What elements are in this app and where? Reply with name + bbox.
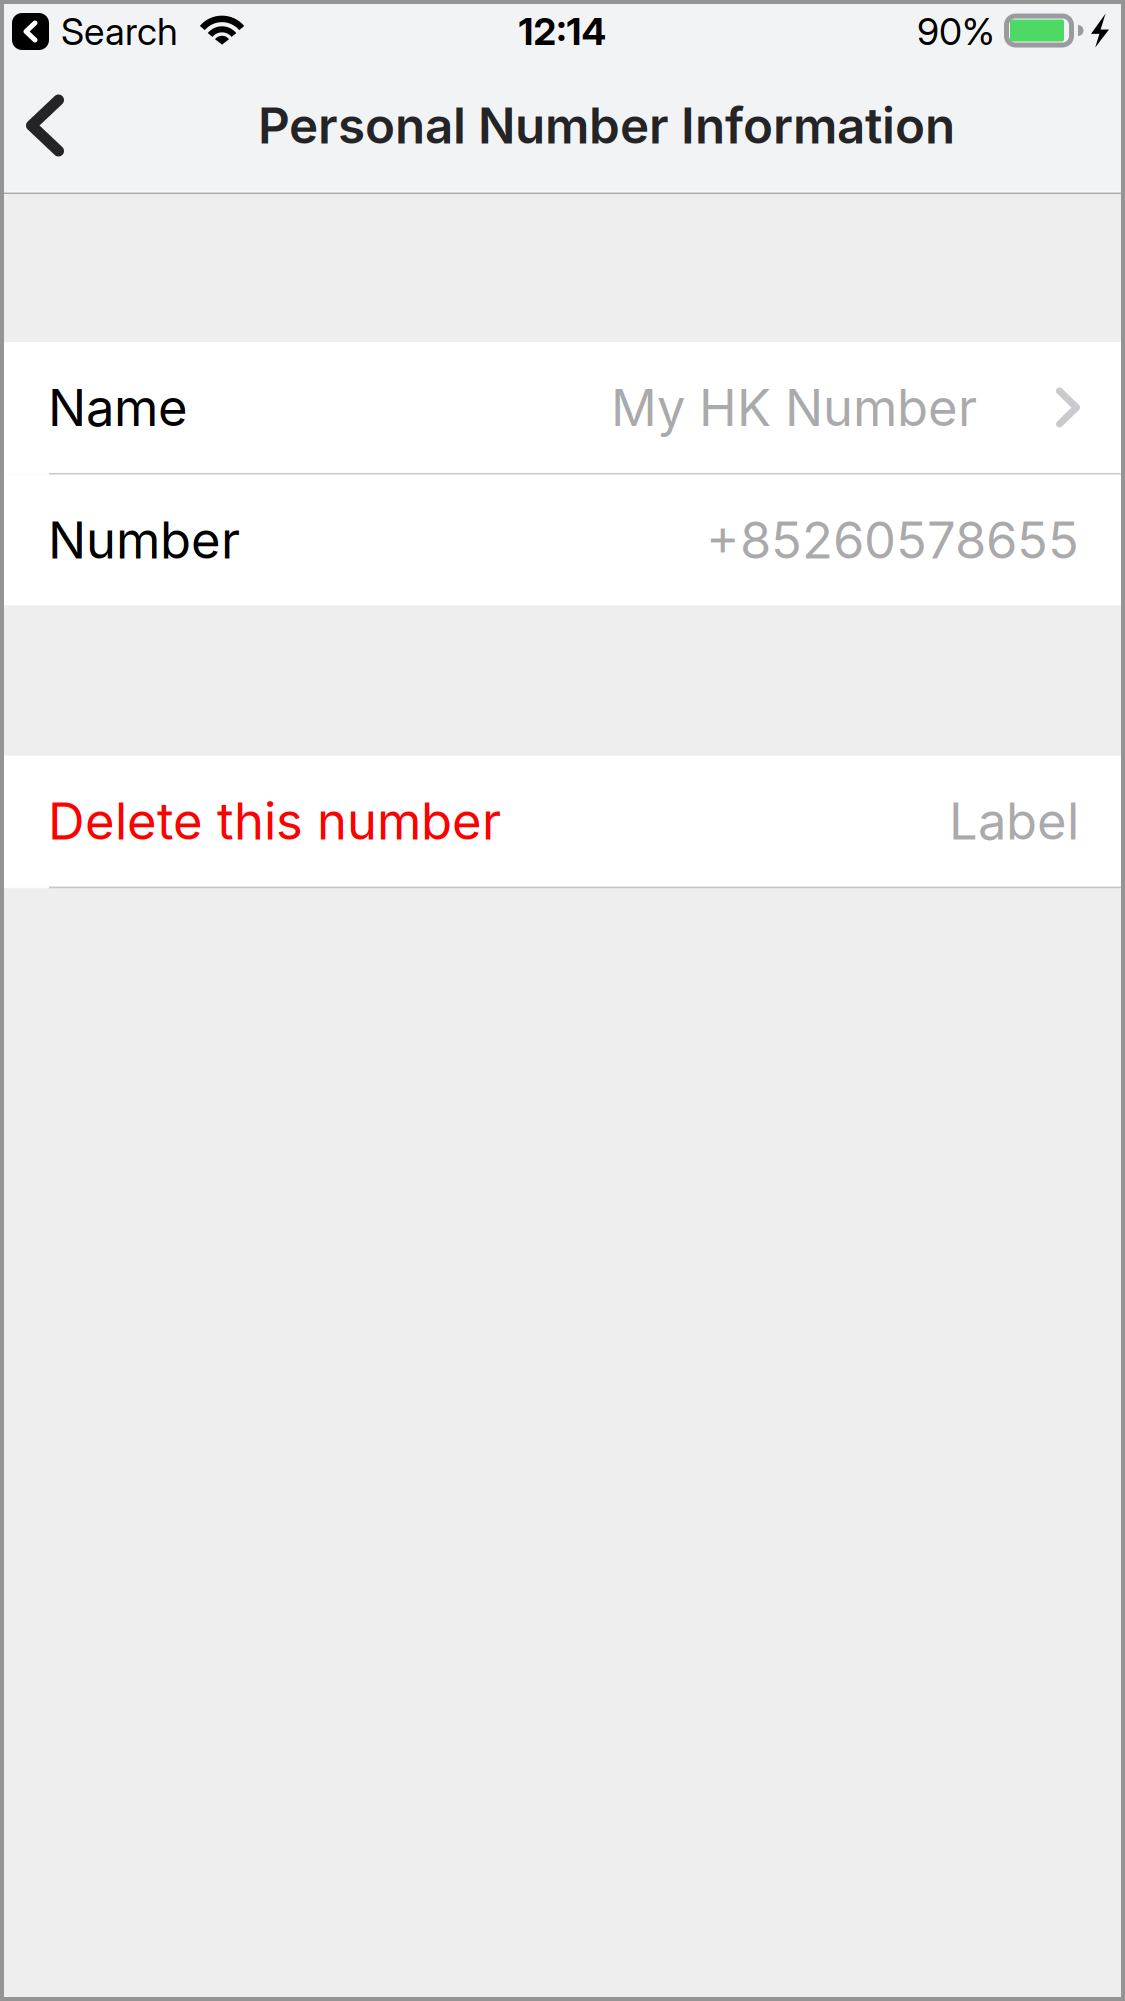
staticText: 90% — [917, 9, 995, 54]
staticText: Name — [48, 377, 188, 438]
staticText: Search — [61, 9, 178, 54]
staticText: Number — [48, 509, 240, 571]
button[interactable]: Delete this number — [4, 756, 1121, 887]
button[interactable]: Number — [4, 475, 1121, 606]
staticText: Personal Number Information — [258, 96, 955, 155]
staticText: My HK Number — [611, 377, 977, 438]
button[interactable]: Search — [12, 9, 184, 54]
staticText: +85260578655 — [706, 509, 1079, 571]
staticText: Label — [949, 790, 1079, 852]
button[interactable]: Back — [4, 76, 90, 174]
staticText: 12:14 — [518, 9, 606, 54]
staticText: Delete this number — [48, 790, 501, 852]
button[interactable]: Name — [4, 342, 1121, 473]
